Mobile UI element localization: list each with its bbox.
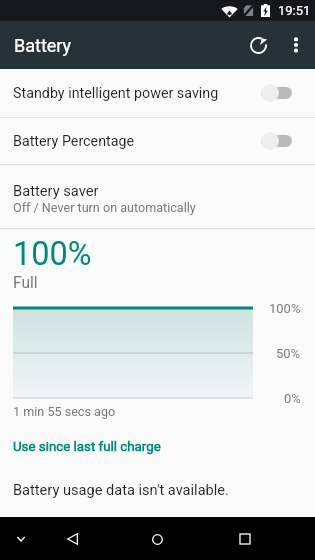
button[interactable]: Back [51, 518, 93, 560]
button[interactable]: Recent apps [224, 518, 266, 560]
button[interactable]: Refresh [235, 24, 277, 66]
button[interactable]: Battery Percentage [0, 118, 315, 164]
button[interactable]: More options [277, 26, 315, 64]
staticText: 100% [269, 301, 301, 316]
staticText: 0% [284, 391, 301, 406]
staticText: 1 min 55 secs ago [13, 404, 116, 419]
staticText: Battery Percentage [13, 133, 261, 150]
button[interactable]: Use since last full charge [0, 436, 315, 458]
staticText: Battery saver [13, 182, 99, 199]
button[interactable]: Hide keyboard [0, 518, 42, 560]
staticText: Full [13, 274, 38, 292]
staticText: 19:51 [278, 3, 311, 18]
staticText: Standby intelligent power saving [13, 85, 261, 102]
staticText: 50% [276, 346, 301, 361]
staticText: Use since last full charge [13, 439, 161, 455]
staticText: 100% [13, 235, 92, 273]
staticText: Off / Never turn on automatically [13, 200, 196, 215]
button[interactable]: Standby intelligent power saving [0, 69, 315, 117]
button[interactable]: Home [136, 518, 178, 560]
button[interactable]: Battery saver [0, 165, 315, 228]
staticText: Battery usage data isn't available. [13, 481, 229, 498]
staticText: Battery [14, 35, 72, 56]
